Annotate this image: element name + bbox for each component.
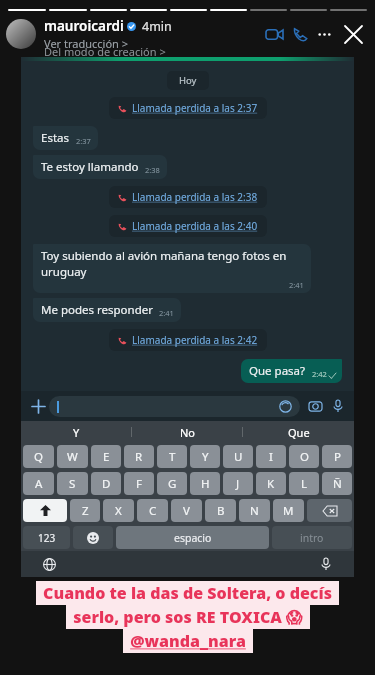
staticText: 4min [142, 18, 172, 35]
button[interactable]: E [91, 445, 121, 468]
button[interactable]: Ñ [322, 472, 352, 495]
button[interactable]: Llamada perdida a las 2:37 [109, 97, 267, 119]
staticText: S [69, 476, 76, 492]
button[interactable]: Voice input [316, 554, 336, 574]
button[interactable] [6, 19, 36, 49]
button[interactable]: D [91, 472, 121, 495]
button[interactable]: P [322, 445, 352, 468]
staticText: espacio [174, 531, 212, 545]
button[interactable]: K [256, 472, 286, 495]
staticText: 2:37 [76, 136, 91, 146]
staticText: intro [300, 531, 324, 545]
button[interactable]: Change language [39, 554, 59, 574]
staticText: K [267, 476, 275, 492]
button[interactable]: H [190, 472, 220, 495]
staticText: Llamada perdida a las 2:38 [132, 190, 258, 204]
button[interactable]: B [205, 499, 236, 522]
button[interactable]: Llamada perdida a las 2:40 [109, 215, 267, 237]
staticText: O [300, 449, 309, 465]
staticText: I [269, 449, 273, 465]
staticText: No [180, 425, 196, 440]
button[interactable]: S [57, 472, 88, 495]
button[interactable]: Close [339, 20, 367, 48]
staticText: Estas [41, 130, 70, 146]
staticText: Y [73, 425, 80, 440]
staticText: H [201, 476, 210, 492]
button[interactable]: Voice call [287, 21, 313, 47]
button[interactable]: R [124, 445, 154, 468]
button[interactable]: T [157, 445, 187, 468]
button[interactable]: Q [23, 445, 54, 468]
staticText: Llamada perdida a las 2:42 [132, 333, 258, 347]
staticText: @wanda_nara [130, 630, 246, 652]
staticText: Me podes responder [41, 302, 153, 318]
staticText: D [102, 476, 111, 492]
button[interactable]: O [289, 445, 319, 468]
staticText: C [149, 503, 157, 519]
button[interactable]: Y [190, 445, 220, 468]
button[interactable]: I [256, 445, 286, 468]
staticText: Toy subiendo al avión mañana tengo fotos… [41, 248, 304, 280]
button[interactable]: W [57, 445, 88, 468]
staticText: Z [82, 503, 89, 519]
staticText: W [67, 449, 78, 465]
button[interactable]: X [103, 499, 134, 522]
staticText: 123 [38, 531, 56, 545]
button[interactable]: 123 [23, 526, 70, 549]
button[interactable]: More options [313, 23, 335, 45]
staticText: mauroicardi [44, 17, 124, 35]
staticText: 2:41 [289, 280, 304, 290]
staticText: serlo, pero sos RE TOXICA 😱 [73, 606, 303, 628]
staticText: 2:41 [159, 308, 174, 318]
button[interactable]: L [289, 472, 319, 495]
staticText: V [183, 503, 190, 519]
button[interactable] [49, 396, 300, 417]
button[interactable]: G [157, 472, 187, 495]
button[interactable]: Que [243, 421, 354, 443]
button[interactable]: Backspace [307, 499, 352, 522]
button[interactable]: N [239, 499, 270, 522]
staticText: P [334, 449, 341, 465]
button[interactable]: Que pasa? [241, 359, 342, 383]
button[interactable]: intro [272, 526, 352, 549]
staticText: Hoy [179, 74, 197, 87]
button[interactable]: V [171, 499, 202, 522]
button[interactable]: M [273, 499, 304, 522]
staticText: X [115, 503, 122, 519]
button[interactable]: U [223, 445, 253, 468]
staticText: U [234, 449, 243, 465]
button[interactable]: C [137, 499, 168, 522]
button[interactable]: J [223, 472, 253, 495]
button[interactable]: Attach [27, 395, 49, 417]
button[interactable]: Me podes responder [33, 298, 181, 322]
button[interactable]: Toy subiendo al avión mañana tengo fotos… [33, 244, 311, 293]
button[interactable]: Te estoy llamando [33, 155, 167, 179]
button[interactable]: Llamada perdida a las 2:42 [109, 329, 267, 351]
button[interactable]: Video call [261, 21, 287, 47]
staticText: Que pasa? [249, 363, 306, 379]
staticText: Del modo de creación > [44, 44, 166, 59]
staticText: Q [34, 449, 43, 465]
button[interactable]: Z [70, 499, 100, 522]
button[interactable]: espacio [116, 526, 269, 549]
button[interactable]: A [23, 472, 54, 495]
button[interactable]: Emoji [73, 526, 113, 549]
staticText: J [236, 476, 240, 492]
staticText: Y [202, 449, 209, 465]
staticText: Ñ [333, 476, 342, 492]
staticText: F [136, 476, 142, 492]
button[interactable]: Camera [305, 396, 325, 416]
button[interactable]: Voice message [328, 396, 348, 416]
button[interactable]: F [124, 472, 154, 495]
button[interactable]: Llamada perdida a las 2:38 [109, 186, 267, 208]
staticText: Llamada perdida a las 2:37 [132, 101, 258, 115]
button[interactable]: Y [21, 421, 132, 443]
button[interactable]: Shift [23, 499, 67, 522]
staticText: 2:38 [145, 165, 160, 175]
button[interactable]: No [132, 421, 243, 443]
button[interactable]: Estas [33, 126, 98, 150]
staticText: Ver traducción > [44, 36, 129, 51]
staticText: R [135, 449, 143, 465]
staticText: Llamada perdida a las 2:40 [132, 219, 258, 233]
staticText: 2:42 [312, 369, 327, 379]
